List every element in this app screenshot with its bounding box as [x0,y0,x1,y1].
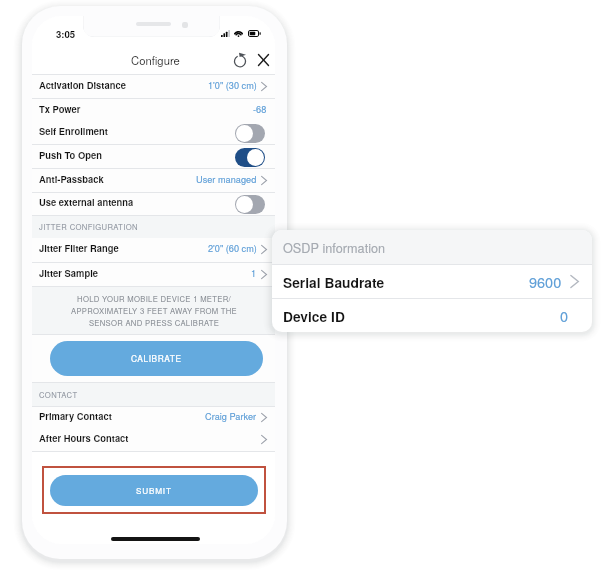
button[interactable]: Push To Open [32,145,275,169]
button[interactable]: Serial Baudrate [272,265,592,298]
staticText: After Hours Contact [39,431,129,444]
button[interactable]: CALIBRATE [50,341,263,376]
button[interactable]: Jitter Filter Range [32,238,275,263]
button[interactable]: Toggle off [235,195,265,214]
staticText: 2'0" (60 cm) [208,241,257,254]
staticText: CONTACT [39,389,78,400]
staticText: Jitter Filter Range [39,241,119,254]
staticText: Tx Power [39,102,81,115]
staticText: Self Enrollment [39,124,108,137]
staticText: Configure [131,52,180,68]
staticText: Use external antenna [39,195,134,208]
button[interactable]: Anti-Passback [32,169,275,193]
staticText: Anti-Passback [39,172,104,185]
staticText: Device ID [283,306,345,326]
staticText: JITTER CONFIGURATION [39,221,138,232]
staticText: Activation Distance [39,78,126,91]
staticText: Push To Open [39,148,102,161]
button[interactable]: Activation Distance [32,75,275,99]
button[interactable]: Jitter Sample [32,263,275,287]
button[interactable]: Primary Contact [32,407,275,430]
button[interactable]: SUBMIT [50,475,258,506]
staticText: 0 [560,305,569,326]
button[interactable]: Use external antenna [32,193,275,216]
staticText: -68 [253,102,267,115]
staticText: OSDP information [283,238,386,256]
staticText: 1 [251,266,257,279]
staticText: SUBMIT [136,485,172,497]
button[interactable]: Tx Power [32,99,275,123]
button[interactable]: Toggle on [235,148,265,167]
staticText: Craig Parker [205,409,257,422]
staticText: CALIBRATE [131,352,182,364]
button[interactable]: Device ID [272,299,592,332]
button[interactable]: Refresh [229,48,251,70]
button[interactable]: Close [252,49,274,71]
staticText: Jitter Sample [39,266,98,279]
button[interactable]: Self Enrollment [32,122,275,145]
button[interactable]: Toggle off [235,124,265,143]
staticText: Primary Contact [39,409,112,422]
staticText: 3:05 [56,27,76,41]
staticText: User managed [196,172,257,185]
staticText: Serial Baudrate [283,272,385,292]
staticText: 9600 [529,271,562,292]
button[interactable]: After Hours Contact [32,429,275,452]
staticText: 1'0" (30 cm) [208,78,257,91]
staticText: HOLD YOUR MOBILE DEVICE 1 METER/ APPROXI… [71,293,237,328]
